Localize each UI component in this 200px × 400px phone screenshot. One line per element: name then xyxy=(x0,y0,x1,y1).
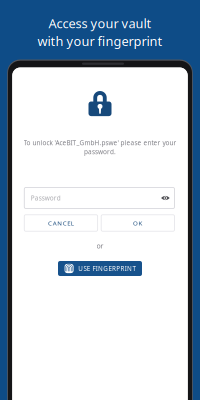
staticText: or xyxy=(96,241,103,250)
staticText: Password xyxy=(31,194,61,202)
staticText: USE FINGERPRINT xyxy=(78,264,135,273)
staticText: OK xyxy=(133,219,143,227)
button[interactable]: OK xyxy=(101,215,174,231)
staticText: To unlock 'AceBIT_GmbH.pswe' please ente… xyxy=(23,138,176,147)
button[interactable]: CANCEL xyxy=(24,215,98,231)
staticText: password. xyxy=(84,147,116,156)
button[interactable]: USE FINGERPRINT xyxy=(58,261,142,276)
staticText: Access your vault xyxy=(48,14,151,32)
staticText: CANCEL xyxy=(48,219,74,227)
staticText: with your fingerprint xyxy=(37,32,162,50)
